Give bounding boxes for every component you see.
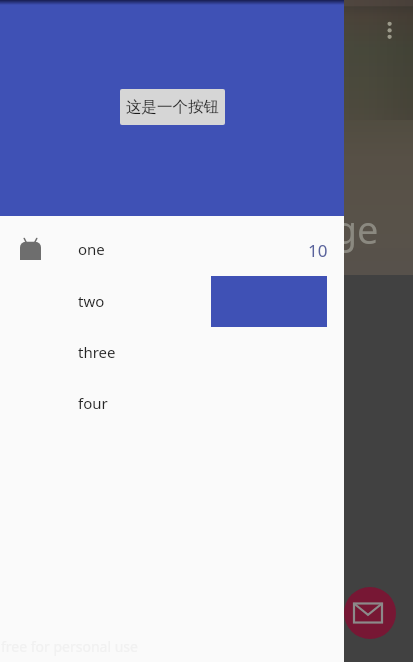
staticText: 10 (308, 239, 328, 262)
button[interactable]: Compose mail (344, 587, 396, 639)
button[interactable]: More options (376, 11, 404, 39)
button[interactable]: two (0, 275, 344, 327)
button[interactable]: 这是一个按钮 (120, 89, 225, 125)
staticText: three (78, 342, 116, 362)
button[interactable]: one (0, 223, 344, 275)
staticText: one (78, 239, 105, 259)
button[interactable]: four (0, 377, 344, 429)
staticText: two (78, 291, 105, 311)
staticText: four (78, 393, 108, 413)
staticText: 这是一个按钮 (126, 97, 219, 117)
staticText: free for personal use (1, 637, 138, 656)
button[interactable]: three (0, 326, 344, 378)
staticText: Image (264, 203, 379, 255)
